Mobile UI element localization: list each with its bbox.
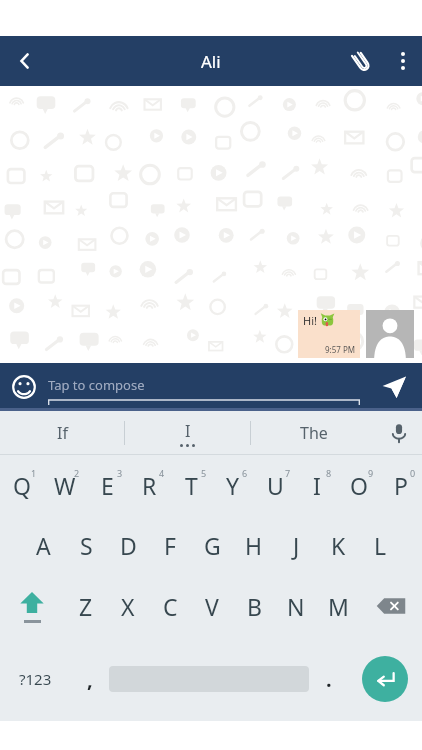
button[interactable]: The — [251, 411, 376, 455]
staticText: 2 — [74, 467, 80, 479]
staticText: I — [313, 470, 321, 501]
staticText: J — [293, 530, 300, 561]
staticText: . — [326, 666, 332, 693]
staticText: E — [101, 470, 114, 501]
button[interactable]: Emoji — [0, 363, 48, 411]
staticText: 9:57 PM — [303, 344, 355, 355]
button[interactable]: V — [191, 575, 233, 637]
staticText: ?123 — [19, 669, 52, 689]
button[interactable]: I — [125, 411, 250, 455]
button[interactable]: If — [0, 411, 124, 455]
staticText: Ali — [201, 50, 221, 73]
button[interactable]: Attach — [338, 36, 384, 86]
staticText: 6 — [242, 467, 248, 479]
button[interactable]: . — [309, 637, 348, 721]
button[interactable]: Backspace — [359, 575, 422, 637]
button[interactable]: Tap to compose — [48, 363, 366, 411]
button[interactable]: S — [65, 515, 107, 575]
button[interactable]: E — [86, 455, 128, 515]
staticText: T — [185, 470, 198, 501]
staticText: Q — [13, 470, 31, 501]
button[interactable]: C — [149, 575, 191, 637]
staticText: P — [394, 470, 408, 501]
staticText: The — [300, 422, 328, 444]
button[interactable]: Z — [64, 575, 107, 637]
button[interactable]: K — [317, 515, 359, 575]
button[interactable]: R — [128, 455, 170, 515]
staticText: 3 — [117, 467, 123, 479]
button[interactable]: Shift — [0, 575, 64, 637]
staticText: X — [121, 591, 135, 622]
button[interactable]: Contact avatar — [366, 310, 414, 358]
button[interactable]: U — [254, 455, 296, 515]
staticText: 4 — [159, 467, 165, 479]
button[interactable]: Send — [366, 363, 422, 411]
staticText: I — [185, 420, 191, 442]
staticText: R — [142, 470, 157, 501]
staticText: H — [245, 530, 263, 561]
button[interactable]: Q — [0, 455, 43, 515]
staticText: 0 — [410, 467, 416, 479]
staticText: O — [350, 470, 368, 501]
staticText: S — [80, 530, 93, 561]
staticText: A — [36, 530, 51, 561]
button[interactable]: L — [359, 515, 401, 575]
button[interactable]: I — [296, 455, 338, 515]
button[interactable]: ?123 — [0, 637, 70, 721]
staticText: , — [87, 666, 93, 693]
staticText: C — [163, 591, 178, 622]
staticText: D — [120, 530, 137, 561]
staticText: L — [374, 530, 387, 561]
button[interactable]: , — [70, 637, 109, 721]
button[interactable]: G — [191, 515, 233, 575]
button[interactable]: Enter — [348, 637, 422, 721]
staticText: Y — [226, 470, 240, 501]
button[interactable]: Back — [0, 36, 50, 86]
button[interactable]: M — [317, 575, 359, 637]
button[interactable]: W — [43, 455, 86, 515]
button[interactable]: D — [107, 515, 149, 575]
staticText: V — [205, 591, 219, 622]
staticText: W — [54, 470, 76, 501]
staticText: K — [331, 530, 346, 561]
button[interactable]: Y — [212, 455, 254, 515]
button[interactable]: H — [233, 515, 275, 575]
button[interactable]: T — [170, 455, 212, 515]
button[interactable]: O — [338, 455, 380, 515]
staticText: U — [267, 470, 284, 501]
button[interactable]: N — [275, 575, 317, 637]
staticText: 1 — [31, 467, 37, 479]
staticText: Hi! — [303, 313, 317, 328]
button[interactable]: More options — [384, 36, 422, 86]
button[interactable] — [109, 637, 309, 721]
button[interactable]: A — [22, 515, 65, 575]
staticText: Z — [79, 591, 93, 622]
button[interactable]: Hi! — [298, 310, 360, 358]
button[interactable]: Voice input — [376, 411, 422, 455]
staticText: M — [328, 591, 349, 622]
staticText: F — [164, 530, 176, 561]
button[interactable]: X — [107, 575, 149, 637]
staticText: 7 — [285, 467, 291, 479]
staticText: 9 — [368, 467, 374, 479]
staticText: 8 — [326, 467, 332, 479]
staticText: B — [247, 591, 262, 622]
button[interactable]: P — [380, 455, 422, 515]
button[interactable]: B — [233, 575, 275, 637]
staticText: Tap to compose — [48, 376, 145, 394]
staticText: If — [57, 422, 68, 444]
staticText: 5 — [201, 467, 207, 479]
button[interactable]: F — [149, 515, 191, 575]
staticText: N — [287, 591, 305, 622]
button[interactable]: J — [275, 515, 317, 575]
staticText: G — [204, 530, 221, 561]
